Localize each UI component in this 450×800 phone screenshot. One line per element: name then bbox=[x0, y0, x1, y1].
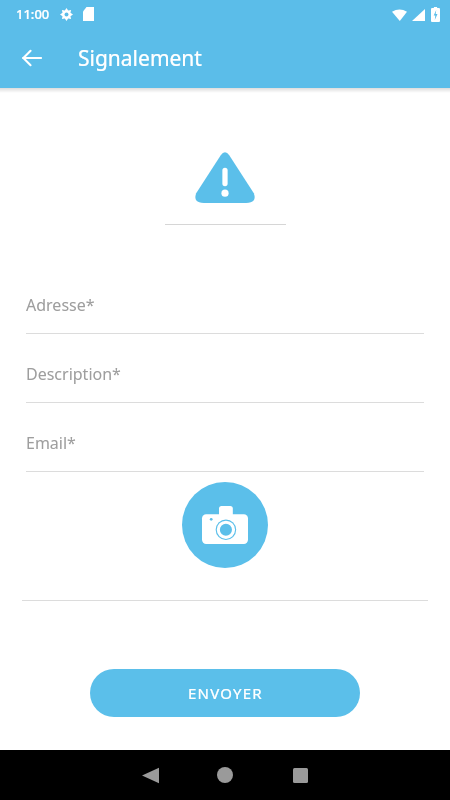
staticText: Adresse* bbox=[26, 294, 95, 316]
button[interactable]: Recent apps bbox=[276, 751, 324, 799]
staticText: Signalement bbox=[78, 44, 202, 73]
button[interactable]: Adresse* bbox=[26, 294, 424, 334]
button[interactable]: Description* bbox=[26, 363, 424, 403]
button[interactable]: Back bbox=[8, 34, 56, 82]
staticText: Description* bbox=[26, 363, 121, 385]
button[interactable]: Email* bbox=[26, 432, 424, 472]
button[interactable]: ENVOYER bbox=[90, 669, 360, 717]
staticText: ENVOYER bbox=[188, 683, 263, 703]
button[interactable]: Home bbox=[201, 751, 249, 799]
button[interactable]: Back bbox=[126, 751, 174, 799]
button[interactable]: Take photo bbox=[182, 482, 268, 568]
staticText: 11:00 bbox=[16, 5, 50, 23]
staticText: Email* bbox=[26, 432, 76, 454]
